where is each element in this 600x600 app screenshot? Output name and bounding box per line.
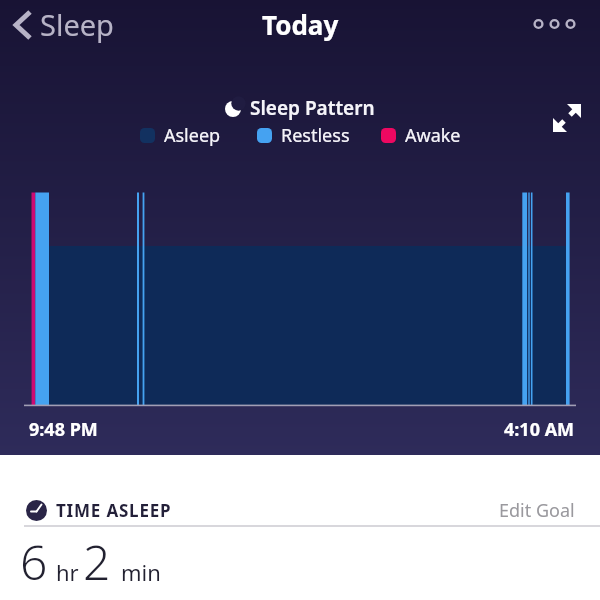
staticText: 6	[20, 529, 48, 594]
staticText: Edit Goal	[499, 498, 575, 523]
staticText: 9:48 PM	[29, 417, 98, 442]
staticText: Sleep Pattern	[250, 95, 375, 121]
staticText: min	[121, 557, 161, 587]
button[interactable]: Edit Goal	[499, 498, 575, 523]
staticText: Asleep	[164, 123, 221, 148]
staticText: Restless	[281, 123, 350, 148]
staticText: TIME ASLEEP	[56, 499, 172, 522]
staticText: Sleep	[40, 5, 114, 44]
button[interactable]: Sleep	[13, 5, 114, 44]
button[interactable]	[550, 100, 586, 136]
staticText: Today	[262, 7, 339, 42]
button[interactable]	[533, 12, 589, 36]
staticText: 4:10 AM	[504, 417, 575, 442]
staticText: hr	[56, 557, 79, 587]
staticText: Awake	[405, 123, 461, 148]
staticText: 2	[83, 529, 111, 594]
